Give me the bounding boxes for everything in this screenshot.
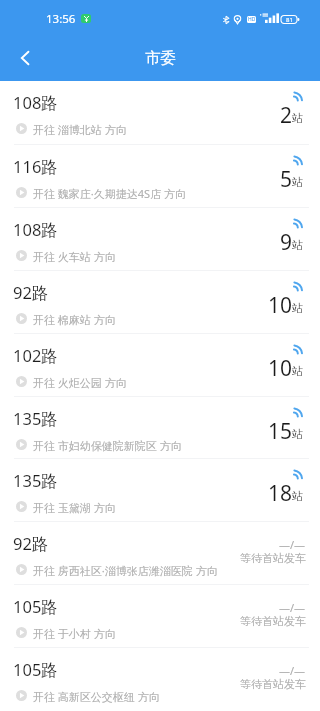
staticText: 开往 房西社区·淄博张店潍淄医院 方向 bbox=[33, 563, 218, 578]
staticText: 135路 bbox=[13, 469, 58, 492]
staticText: 站 bbox=[292, 111, 303, 125]
staticText: 108路 bbox=[13, 218, 58, 241]
staticText: 站 bbox=[292, 175, 303, 189]
staticText: 5 bbox=[280, 165, 293, 194]
button[interactable]: Back bbox=[2, 35, 48, 81]
staticText: 81 bbox=[286, 16, 293, 24]
staticText: 开往 于小村 方向 bbox=[33, 626, 116, 641]
button[interactable]: 135路 bbox=[0, 397, 320, 459]
staticText: 开往 魏家庄·久期捷达4S店 方向 bbox=[33, 186, 186, 201]
staticText: 站 bbox=[292, 238, 303, 252]
staticText: 站 bbox=[292, 427, 303, 441]
button[interactable]: 92路 bbox=[0, 522, 320, 585]
staticText: 开往 高新区公交枢纽 方向 bbox=[33, 689, 160, 704]
staticText: 市委 bbox=[145, 48, 176, 68]
staticText: 站 bbox=[292, 489, 303, 503]
staticText: —/— bbox=[279, 537, 306, 552]
staticText: 105路 bbox=[13, 658, 58, 681]
staticText: 92路 bbox=[13, 281, 49, 304]
button[interactable]: 108路 bbox=[0, 208, 320, 271]
staticText: 站 bbox=[292, 364, 303, 378]
staticText: —/— bbox=[279, 663, 306, 678]
button[interactable]: 108路 bbox=[0, 81, 320, 145]
staticText: 开往 火炬公园 方向 bbox=[33, 375, 127, 390]
staticText: 开往 棉麻站 方向 bbox=[33, 312, 116, 327]
staticText: 135路 bbox=[13, 407, 58, 430]
staticText: 108路 bbox=[13, 91, 58, 114]
button[interactable]: 102路 bbox=[0, 334, 320, 397]
staticText: 105路 bbox=[13, 595, 58, 618]
staticText: 116路 bbox=[13, 155, 58, 178]
staticText: 开往 淄博北站 方向 bbox=[33, 122, 127, 137]
staticText: 等待首站发车 bbox=[240, 677, 306, 691]
staticText: HD bbox=[248, 16, 256, 23]
staticText: 等待首站发车 bbox=[240, 614, 306, 628]
staticText: 102路 bbox=[13, 344, 58, 367]
staticText: 等待首站发车 bbox=[240, 551, 306, 565]
staticText: 18 bbox=[268, 479, 293, 508]
staticText: 15 bbox=[268, 417, 293, 446]
button[interactable]: 116路 bbox=[0, 145, 320, 208]
staticText: 10 bbox=[268, 354, 293, 383]
button[interactable]: 105路 bbox=[0, 648, 320, 711]
staticText: 开往 玉黛湖 方向 bbox=[33, 500, 116, 515]
staticText: 13:56 bbox=[46, 11, 76, 27]
staticText: 开往 火车站 方向 bbox=[33, 249, 116, 264]
staticText: 9 bbox=[280, 228, 293, 257]
button[interactable]: 92路 bbox=[0, 271, 320, 334]
staticText: 开往 市妇幼保健院新院区 方向 bbox=[33, 438, 182, 453]
staticText: —/— bbox=[279, 600, 306, 615]
staticText: 10 bbox=[268, 291, 293, 320]
staticText: 站 bbox=[292, 301, 303, 315]
button[interactable]: 135路 bbox=[0, 459, 320, 522]
staticText: 2 bbox=[280, 101, 293, 130]
button[interactable]: 105路 bbox=[0, 585, 320, 648]
staticText: 92路 bbox=[13, 532, 49, 555]
